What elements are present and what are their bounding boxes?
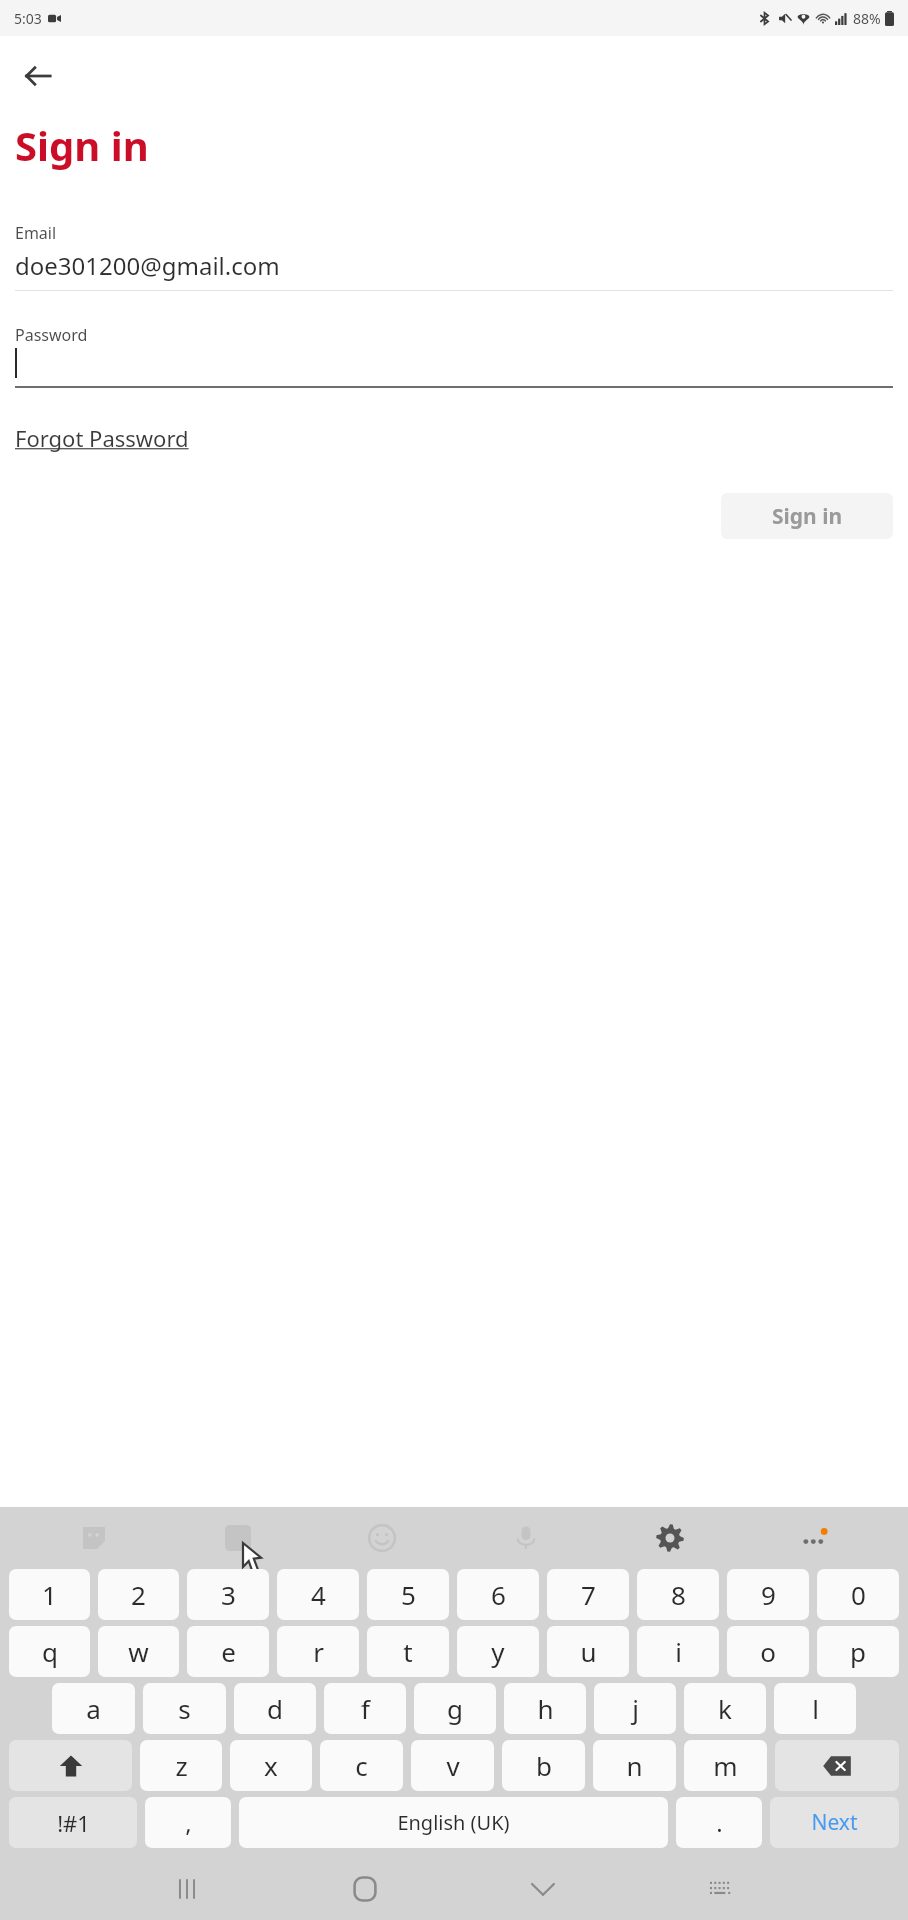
staticText: s (178, 1691, 191, 1726)
staticText: doe301200@gmail.com (15, 249, 280, 282)
staticText: l (812, 1691, 819, 1726)
button[interactable]: 9 (727, 1569, 809, 1620)
button[interactable]: 5 (367, 1569, 449, 1620)
button[interactable]: 3 (187, 1569, 269, 1620)
button[interactable]: Recents (98, 1858, 276, 1920)
staticText: d (267, 1691, 283, 1726)
button[interactable]: p (817, 1626, 899, 1677)
staticText: 9 (761, 1577, 776, 1612)
button[interactable]: 0 (817, 1569, 899, 1620)
staticText: Next (811, 1808, 858, 1837)
button[interactable]: GIF (166, 1507, 310, 1569)
other: Voice input (513, 1525, 539, 1551)
staticText: b (536, 1748, 552, 1783)
button[interactable]: n (593, 1740, 676, 1791)
staticText: e (221, 1634, 236, 1669)
staticText: c (355, 1748, 368, 1783)
staticText: Password (15, 324, 88, 346)
button[interactable]: w (98, 1626, 179, 1677)
staticText: n (626, 1748, 643, 1783)
other: More options (797, 1523, 831, 1553)
button[interactable]: o (727, 1626, 809, 1677)
button[interactable]: q (9, 1626, 90, 1677)
button[interactable]: Hide keyboard (454, 1858, 632, 1920)
button[interactable]: x (230, 1740, 312, 1791)
button[interactable]: 7 (547, 1569, 629, 1620)
staticText: m (713, 1748, 738, 1783)
other: GIF (225, 1525, 251, 1551)
button[interactable]: Forgot Password (15, 423, 189, 453)
staticText: k (718, 1691, 732, 1726)
button[interactable]: f (324, 1683, 406, 1734)
button[interactable]: y (457, 1626, 539, 1677)
button[interactable]: 4 (277, 1569, 359, 1620)
staticText: y (491, 1634, 505, 1669)
button[interactable]: a (52, 1683, 135, 1734)
button[interactable]: s (143, 1683, 226, 1734)
button[interactable]: Stickers (22, 1507, 166, 1569)
button[interactable]: More options (742, 1507, 886, 1569)
staticText: p (850, 1634, 866, 1669)
staticText: h (537, 1691, 554, 1726)
button[interactable]: z (140, 1740, 222, 1791)
staticText: 3 (221, 1577, 236, 1612)
staticText: 7 (581, 1577, 596, 1612)
button[interactable]: Keyboard settings (598, 1507, 742, 1569)
staticText: v (446, 1748, 460, 1783)
button[interactable]: j (594, 1683, 676, 1734)
staticText: Email (15, 222, 57, 244)
staticText: 6 (491, 1577, 506, 1612)
button[interactable]: , (145, 1797, 231, 1848)
button[interactable]: . (676, 1797, 762, 1848)
staticText: t (403, 1634, 413, 1669)
button[interactable]: t (367, 1626, 449, 1677)
staticText: , (185, 1806, 192, 1839)
button[interactable]: Home (276, 1858, 454, 1920)
button[interactable]: 2 (98, 1569, 179, 1620)
button[interactable]: English (UK) (239, 1797, 668, 1848)
staticText: j (632, 1691, 639, 1726)
staticText: 5 (401, 1577, 416, 1612)
button[interactable]: v (411, 1740, 494, 1791)
button[interactable]: Back (12, 50, 64, 102)
staticText: 1 (42, 1577, 57, 1612)
button[interactable]: d (234, 1683, 316, 1734)
button[interactable]: e (187, 1626, 269, 1677)
button[interactable]: Shift (9, 1740, 132, 1791)
staticText: q (42, 1634, 58, 1669)
other: Stickers (81, 1525, 107, 1551)
button[interactable]: 8 (637, 1569, 719, 1620)
button[interactable]: Backspace (775, 1740, 899, 1791)
staticText: x (264, 1748, 278, 1783)
button[interactable]: r (277, 1626, 359, 1677)
other: Keyboard settings (655, 1523, 685, 1553)
staticText: 2 (131, 1577, 146, 1612)
staticText: i (675, 1634, 682, 1669)
button[interactable]: Next (770, 1797, 899, 1848)
staticText: o (760, 1634, 776, 1669)
button[interactable]: 6 (457, 1569, 539, 1620)
staticText: a (86, 1691, 101, 1726)
staticText: 88% (853, 9, 881, 28)
button[interactable]: i (637, 1626, 719, 1677)
button[interactable]: u (547, 1626, 629, 1677)
staticText: g (447, 1691, 463, 1726)
staticText: z (175, 1748, 188, 1783)
staticText: 5:03 (14, 9, 42, 28)
staticText: Forgot Password (15, 423, 189, 453)
staticText: f (361, 1691, 370, 1726)
button[interactable]: 1 (9, 1569, 90, 1620)
button[interactable]: b (502, 1740, 585, 1791)
button[interactable]: l (774, 1683, 856, 1734)
other: Emoji (368, 1524, 396, 1552)
button[interactable]: h (504, 1683, 586, 1734)
button[interactable]: !#1 (9, 1797, 137, 1848)
button[interactable]: k (684, 1683, 766, 1734)
button[interactable]: c (320, 1740, 403, 1791)
button[interactable]: m (684, 1740, 767, 1791)
button[interactable]: g (414, 1683, 496, 1734)
button[interactable]: Sign in (721, 493, 893, 539)
button[interactable]: Change keyboard (632, 1858, 810, 1920)
